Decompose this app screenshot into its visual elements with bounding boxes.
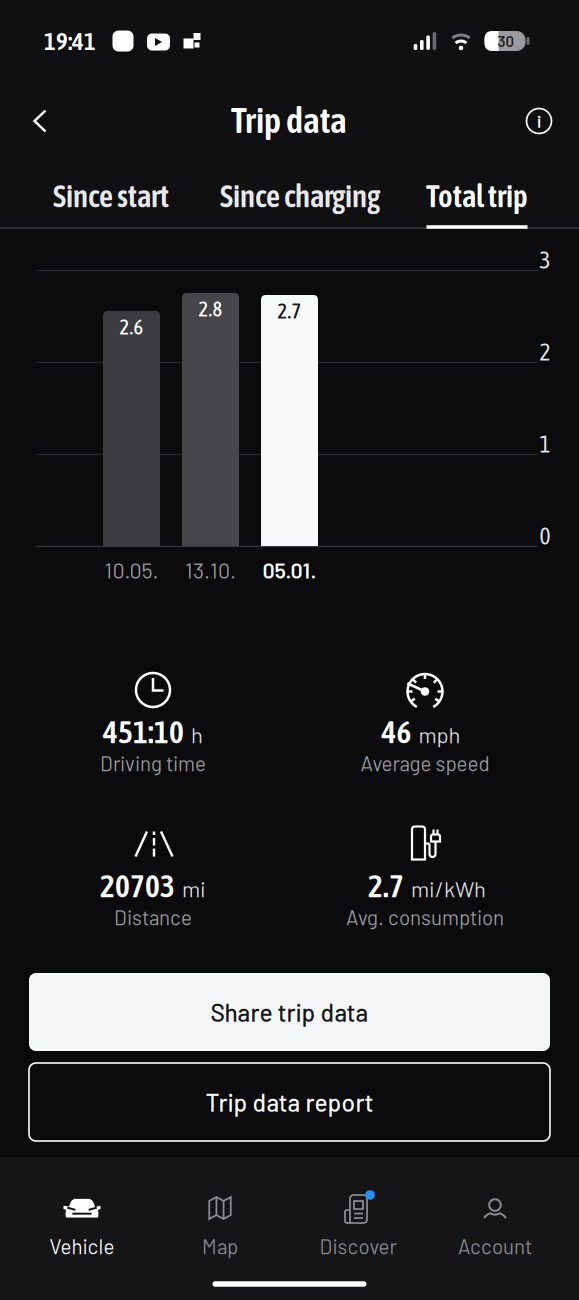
staticText: 1 (539, 430, 550, 457)
staticText: Map (202, 1234, 238, 1258)
button[interactable]: Back (18, 99, 62, 143)
button[interactable]: Info (517, 99, 561, 143)
staticText: 2.8 (198, 297, 222, 321)
staticText: 10.05. (104, 557, 158, 583)
button[interactable]: Share trip data (29, 973, 550, 1051)
staticText: 0 (539, 522, 550, 549)
staticText: Distance (114, 905, 192, 929)
button[interactable]: Since start (53, 167, 169, 225)
staticText: 46 (381, 714, 411, 750)
staticText: Average speed (360, 751, 489, 775)
staticText: 2.7 (368, 868, 404, 904)
staticText: Share trip data (210, 997, 368, 1027)
staticText: Account (458, 1234, 532, 1258)
staticText: 05.01. (262, 557, 316, 583)
staticText: Trip data report (205, 1087, 373, 1117)
staticText: 451:10 (103, 714, 184, 750)
staticText: 2.6 (119, 315, 143, 339)
staticText: Total trip (426, 178, 528, 214)
button[interactable]: Map (151, 1180, 289, 1272)
button[interactable]: Vehicle (13, 1180, 151, 1272)
button[interactable]: Trip data report (29, 1063, 550, 1141)
button[interactable]: Total trip (426, 167, 528, 225)
staticText: Since charging (220, 178, 380, 214)
staticText: i (537, 111, 541, 131)
button[interactable]: Since charging (220, 167, 380, 225)
staticText: Trip data (231, 99, 347, 141)
staticText: mph (418, 721, 460, 748)
staticText: Since start (53, 178, 169, 214)
button[interactable]: Account (426, 1180, 564, 1272)
staticText: mi (182, 875, 206, 902)
staticText: mi/kWh (411, 875, 486, 902)
staticText: Discover (319, 1234, 396, 1258)
staticText: h (191, 721, 203, 748)
staticText: 19:41 (44, 27, 96, 55)
staticText: Driving time (100, 751, 206, 775)
staticText: 2 (539, 338, 550, 365)
staticText: Avg. consumption (346, 905, 504, 929)
staticText: 13.10. (185, 557, 236, 583)
staticText: 2.7 (277, 299, 301, 323)
staticText: 20703 (100, 868, 175, 904)
button[interactable]: Discover (289, 1180, 427, 1272)
staticText: Vehicle (49, 1234, 114, 1258)
staticText: 3 (539, 246, 550, 273)
staticText: 30 (497, 32, 514, 50)
